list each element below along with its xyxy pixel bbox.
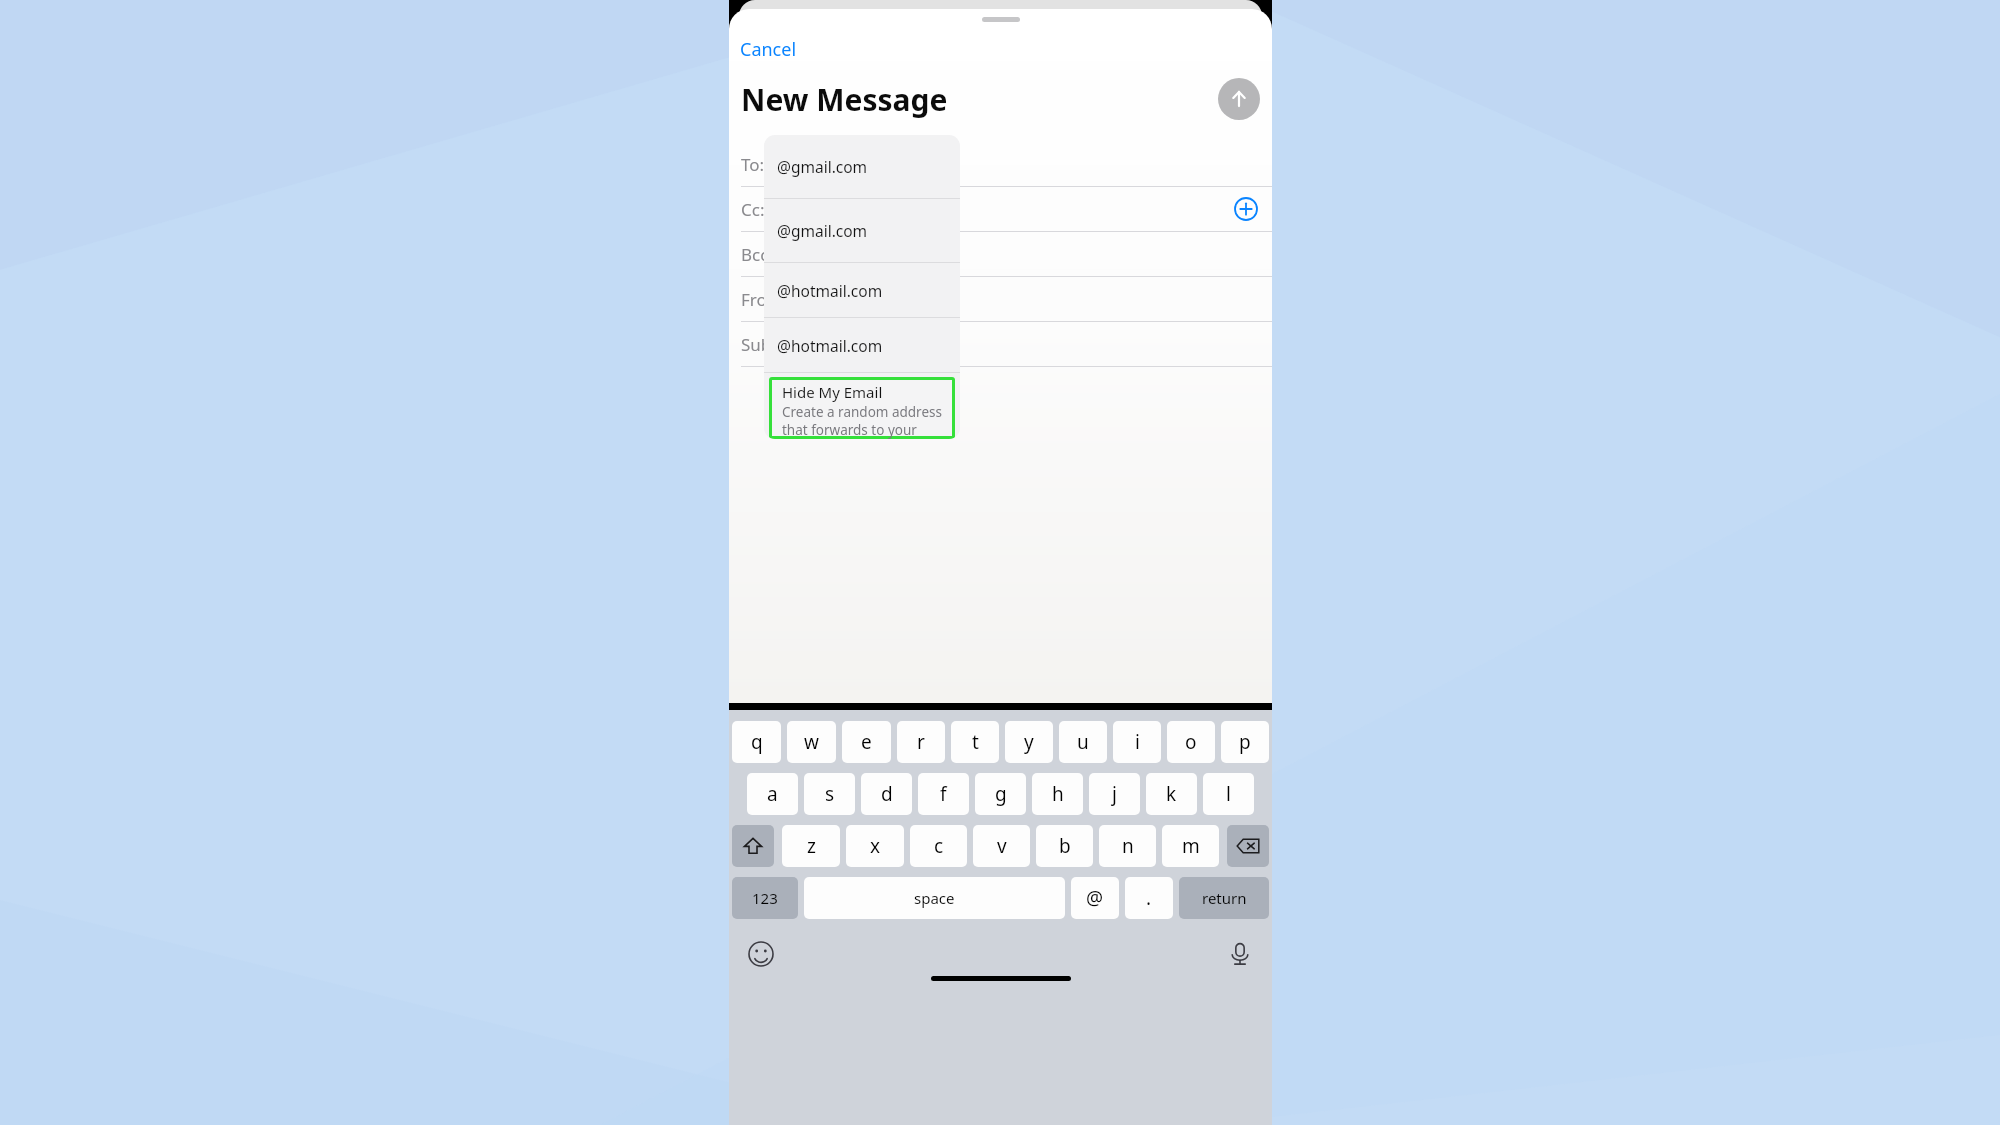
button[interactable]: b	[1036, 825, 1093, 867]
staticText: 123	[752, 888, 778, 908]
button[interactable]: y	[1005, 721, 1053, 763]
staticText: d	[881, 781, 893, 807]
button[interactable]: u	[1059, 721, 1107, 763]
button[interactable]: z	[782, 825, 840, 867]
staticText: f	[940, 781, 947, 807]
staticText: j	[1112, 781, 1117, 807]
button[interactable]: a	[747, 773, 798, 815]
button[interactable]: Subject:	[729, 322, 1272, 367]
staticText: New Message	[741, 79, 948, 120]
staticText: t	[972, 729, 979, 755]
staticText: .	[1146, 885, 1152, 911]
button[interactable]: k	[1146, 773, 1197, 815]
staticText: w	[804, 729, 819, 755]
staticText: To:	[741, 153, 765, 176]
button[interactable]: h	[1032, 773, 1083, 815]
button[interactable]: .	[1125, 877, 1173, 919]
button[interactable]: @gmail.com	[764, 199, 960, 263]
staticText: y	[1024, 729, 1034, 755]
staticText: @	[1086, 885, 1104, 911]
button[interactable]: Bcc:	[729, 232, 1272, 277]
button[interactable]: n	[1099, 825, 1156, 867]
staticText: Cancel	[740, 37, 797, 62]
staticText: l	[1226, 781, 1231, 807]
button[interactable]: r	[897, 721, 945, 763]
button[interactable]: Add contact	[1232, 195, 1260, 223]
staticText: From:	[741, 288, 788, 311]
staticText: Create a random address	[782, 403, 942, 421]
button[interactable]: @gmail.com	[764, 135, 960, 199]
button[interactable]: x	[846, 825, 904, 867]
button[interactable]: t	[951, 721, 999, 763]
staticText: k	[1166, 781, 1177, 807]
button[interactable]: g	[975, 773, 1026, 815]
staticText: space	[914, 888, 955, 908]
button[interactable]: @	[1071, 877, 1119, 919]
staticText: a	[767, 781, 778, 807]
staticText: h	[1052, 781, 1064, 807]
button[interactable]: To:	[729, 142, 1272, 187]
staticText: that forwards to your inbox.	[782, 421, 955, 439]
button[interactable]: Send	[1218, 78, 1260, 120]
button[interactable]: Cancel	[736, 33, 801, 66]
button[interactable]: j	[1089, 773, 1140, 815]
staticText: r	[917, 729, 925, 755]
button[interactable]: s	[804, 773, 855, 815]
staticText: s	[825, 781, 835, 807]
button[interactable]: w	[787, 721, 836, 763]
staticText: x	[870, 833, 881, 859]
staticText: v	[997, 833, 1007, 859]
staticText: @hotmail.com	[777, 335, 883, 356]
button[interactable]: l	[1203, 773, 1254, 815]
button[interactable]: @hotmail.com	[764, 263, 960, 318]
staticText: i	[1135, 729, 1140, 755]
button[interactable]: i	[1113, 721, 1161, 763]
button[interactable]: q	[732, 721, 781, 763]
staticText: e	[861, 729, 872, 755]
staticText: Subject:	[741, 333, 805, 356]
staticText: Hide My Email	[782, 382, 883, 402]
button[interactable]: o	[1167, 721, 1215, 763]
staticText: c	[934, 833, 944, 859]
button[interactable]: Shift	[732, 825, 774, 867]
button[interactable]: p	[1221, 721, 1269, 763]
button[interactable]: m	[1162, 825, 1219, 867]
staticText: b	[1059, 833, 1071, 859]
button[interactable]: d	[861, 773, 912, 815]
button[interactable]: 123	[732, 877, 798, 919]
staticText: o	[1185, 729, 1197, 755]
button[interactable]: From:	[729, 277, 1272, 322]
staticText: return	[1202, 888, 1247, 908]
button[interactable]: c	[910, 825, 967, 867]
staticText: p	[1239, 729, 1251, 755]
staticText: Bcc:	[741, 243, 773, 266]
staticText: @hotmail.com	[777, 280, 883, 301]
staticText: z	[807, 833, 816, 859]
button[interactable]: f	[918, 773, 969, 815]
button[interactable]: v	[973, 825, 1030, 867]
staticText: @gmail.com	[777, 220, 868, 241]
staticText: Cc:	[741, 198, 765, 221]
staticText: u	[1077, 729, 1089, 755]
button[interactable]: @hotmail.com	[764, 318, 960, 373]
button[interactable]: Dictation	[1224, 938, 1256, 970]
button[interactable]: e	[842, 721, 891, 763]
staticText: @gmail.com	[777, 156, 868, 177]
button[interactable]: return	[1179, 877, 1269, 919]
staticText: m	[1182, 833, 1200, 859]
button[interactable]: Hide My Email	[769, 377, 955, 439]
staticText: g	[995, 781, 1007, 807]
button[interactable]: Emoji	[745, 938, 777, 970]
button[interactable]: space	[804, 877, 1065, 919]
staticText: q	[751, 729, 763, 755]
button[interactable]: Backspace	[1227, 825, 1269, 867]
button[interactable]: Cc:	[729, 187, 1272, 232]
staticText: n	[1122, 833, 1134, 859]
